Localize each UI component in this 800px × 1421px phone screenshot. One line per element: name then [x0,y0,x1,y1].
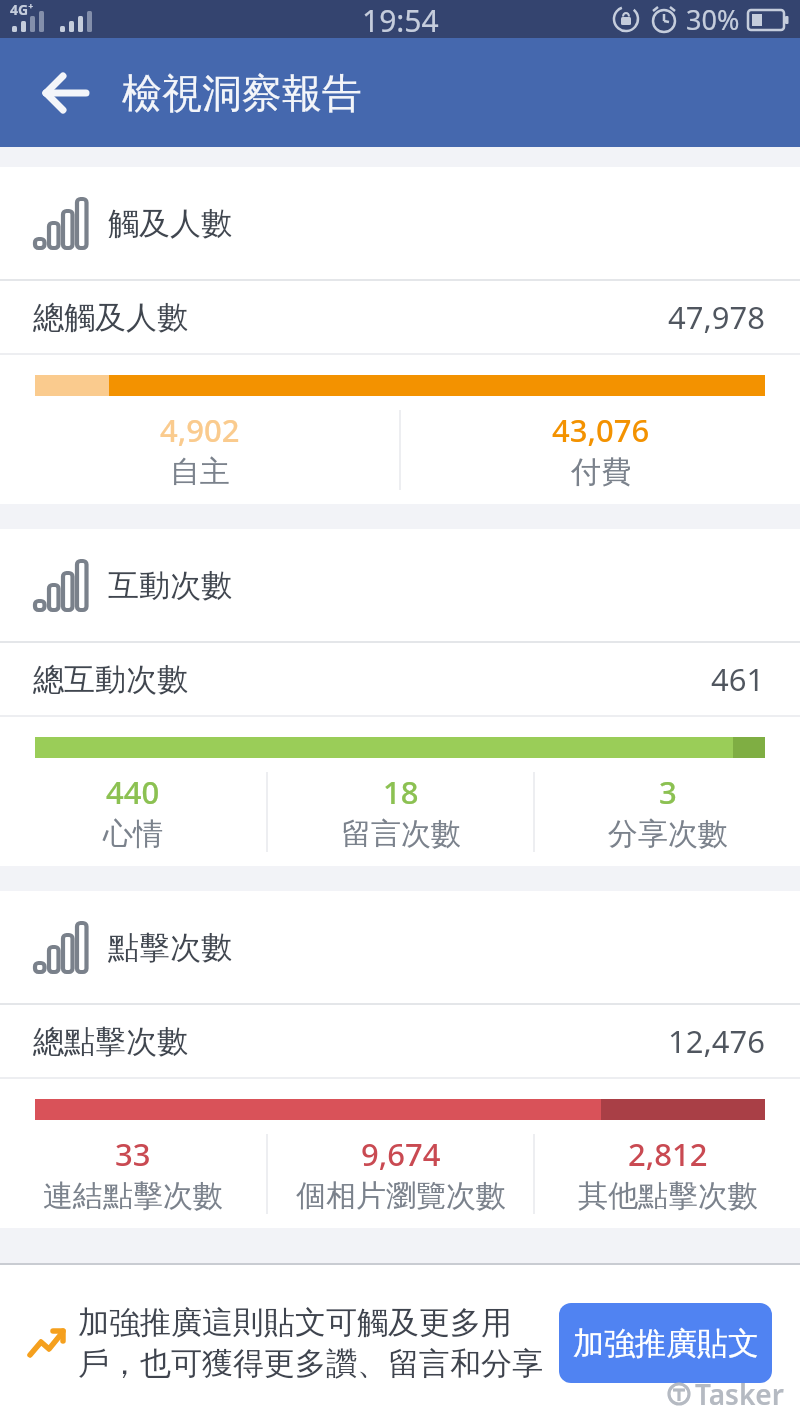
staticText: 連結點擊次數 [43,1177,223,1215]
staticText: 總互動次數 [33,660,188,699]
button[interactable]: 33 [0,1133,266,1215]
staticText: 440 [106,771,160,813]
staticText: 點擊次數 [108,928,232,967]
staticText: 47,978 [668,296,765,338]
button[interactable]: 總互動次數 [0,643,800,715]
staticText: 互動次數 [108,566,232,605]
button[interactable]: 3 [535,771,800,853]
staticText: 加強推廣這則貼文可觸及更多用 戶，也可獲得更多讚、留言和分享 [78,1303,545,1384]
staticText: 自主 [170,453,230,491]
staticText: 12,476 [668,1020,765,1062]
staticText: 分享次數 [608,815,728,853]
button[interactable]: 18 [268,771,533,853]
staticText: 總觸及人數 [33,298,188,337]
staticText: 檢視洞察報告 [122,68,362,118]
staticText: 其他點擊次數 [578,1177,758,1215]
button[interactable] [20,38,112,147]
button[interactable]: 點擊次數 [0,891,800,1003]
staticText: 18 [383,771,419,813]
staticText: Tasker [695,1375,784,1413]
staticText: 461 [711,658,765,700]
staticText: 43,076 [552,409,650,451]
button[interactable]: 總點擊次數 [0,1005,800,1077]
staticText: 4,902 [160,409,240,451]
button[interactable]: 4,902 [0,409,399,491]
staticText: 加強推廣貼文 [573,1324,759,1363]
button[interactable]: 加強推廣貼文 [559,1303,772,1383]
staticText: 觸及人數 [108,204,232,243]
button[interactable]: 2,812 [535,1133,800,1215]
button[interactable]: 440 [0,771,266,853]
staticText: 留言次數 [341,815,461,853]
staticText: 9,674 [361,1133,441,1175]
staticText: 33 [115,1133,151,1175]
button[interactable]: 觸及人數 [0,167,800,279]
staticText: 30% [686,1,740,38]
staticText: 4G⁺ [10,0,34,19]
staticText: 3 [659,771,677,813]
staticText: 個相片瀏覽次數 [296,1177,506,1215]
staticText: 心情 [103,815,163,853]
button[interactable]: 43,076 [401,409,800,491]
staticText: 19:54 [362,0,439,38]
staticText: 付費 [571,453,631,491]
button[interactable]: 總觸及人數 [0,281,800,353]
staticText: 總點擊次數 [33,1022,188,1061]
button[interactable]: 互動次數 [0,529,800,641]
button[interactable]: 9,674 [268,1133,533,1215]
staticText: 2,812 [628,1133,708,1175]
